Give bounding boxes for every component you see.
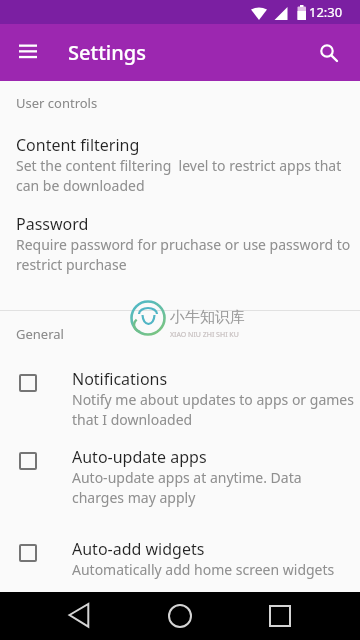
staticText: Auto-update apps at anytime. Data charge… (72, 468, 302, 508)
staticText: Content filtering (16, 134, 140, 156)
button[interactable] (256, 592, 304, 640)
button[interactable]: Auto-update apps (0, 446, 360, 508)
button[interactable]: Auto-add widgets (0, 538, 360, 579)
button[interactable]: Content filtering (0, 134, 360, 196)
staticText: Require password for pruchase or use pas… (16, 235, 351, 275)
staticText: General (16, 325, 64, 343)
staticText: Automatically add home screen widgets (72, 560, 335, 579)
staticText: Notify me about updates to apps or games… (72, 390, 354, 430)
staticText: 12:30 (309, 3, 343, 21)
button[interactable] (4, 29, 52, 77)
button[interactable] (305, 29, 353, 77)
staticText: 小牛知识库 (170, 308, 245, 327)
staticText: User controls (16, 94, 98, 112)
staticText: Settings (68, 39, 146, 66)
button[interactable]: Notifications (0, 368, 360, 430)
staticText: Auto-add widgets (72, 538, 205, 560)
button[interactable] (156, 592, 204, 640)
staticText: XIAO NIU ZHI SHI KU (170, 330, 239, 340)
button[interactable] (55, 592, 103, 640)
staticText: Set the content filtering level to restr… (16, 156, 342, 196)
button[interactable]: Password (0, 213, 360, 275)
staticText: Password (16, 213, 89, 235)
staticText: Notifications (72, 368, 168, 390)
staticText: Auto-update apps (72, 446, 207, 468)
